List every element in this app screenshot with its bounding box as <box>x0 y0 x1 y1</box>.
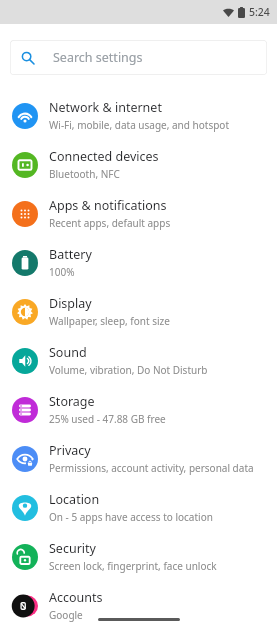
staticText: Connected devices <box>49 148 159 165</box>
staticText: On - 5 apps have access to location <box>49 510 213 524</box>
button[interactable]: Connected devices <box>0 140 277 189</box>
staticText: Privacy <box>49 442 91 459</box>
button[interactable]: Storage <box>0 385 277 434</box>
staticText: Apps & notifications <box>49 197 167 214</box>
button[interactable]: Search settings <box>10 40 267 75</box>
staticText: Recent apps, default apps <box>49 216 171 230</box>
staticText: Wallpaper, sleep, font size <box>49 314 170 328</box>
staticText: Network & internet <box>49 99 162 116</box>
button[interactable]: Battery <box>0 238 277 287</box>
button[interactable]: Privacy <box>0 434 277 483</box>
staticText: Storage <box>49 393 95 410</box>
staticText: Google <box>49 608 83 622</box>
button[interactable]: Sound <box>0 336 277 385</box>
staticText: Volume, vibration, Do Not Disturb <box>49 363 208 377</box>
staticText: Wi-Fi, mobile, data usage, and hotspot <box>49 118 229 132</box>
staticText: 25% used - 47.88 GB free <box>49 412 166 426</box>
staticText: Permissions, account activity, personal … <box>49 461 254 475</box>
staticText: Security <box>49 540 96 557</box>
staticText: 5:24 <box>249 5 270 19</box>
button[interactable]: Location <box>0 483 277 532</box>
button[interactable]: Display <box>0 287 277 336</box>
staticText: Display <box>49 295 92 312</box>
staticText: Screen lock, fingerprint, face unlock <box>49 559 217 573</box>
staticText: Accounts <box>49 589 103 606</box>
button[interactable]: Security <box>0 532 277 581</box>
staticText: Search settings <box>53 49 143 66</box>
staticText: Bluetooth, NFC <box>49 167 120 181</box>
button[interactable]: Network & internet <box>0 91 277 140</box>
staticText: Location <box>49 491 100 508</box>
staticText: Sound <box>49 344 87 361</box>
staticText: Battery <box>49 246 92 263</box>
button[interactable]: Apps & notifications <box>0 189 277 238</box>
staticText: 100% <box>49 265 75 279</box>
button[interactable]: Accounts <box>0 581 277 630</box>
